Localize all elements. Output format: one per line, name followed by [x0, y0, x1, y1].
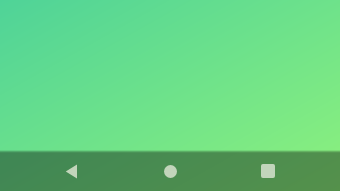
button[interactable]: Back: [51, 151, 91, 191]
button[interactable]: Recent apps: [248, 151, 288, 191]
button[interactable]: Home: [150, 151, 190, 191]
